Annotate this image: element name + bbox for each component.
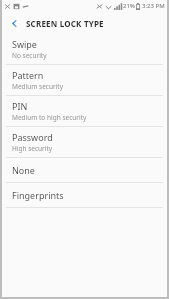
staticText: Fingerprints	[12, 189, 64, 201]
staticText: Swipe	[12, 38, 37, 50]
staticText: 3:23 PM	[142, 2, 165, 10]
staticText: Pattern	[12, 69, 44, 81]
staticText: No security	[12, 51, 47, 60]
button[interactable]: PIN	[2, 96, 167, 126]
staticText: Medium security	[12, 82, 63, 91]
button[interactable]: Swipe	[2, 34, 167, 64]
staticText: PIN	[12, 100, 28, 112]
button[interactable]: Fingerprints	[2, 183, 167, 207]
staticText: SCREEN LOCK TYPE	[26, 18, 104, 29]
staticText: None	[12, 164, 35, 176]
button[interactable]: Pattern	[2, 65, 167, 95]
button[interactable]: Password	[2, 127, 167, 157]
button[interactable]: None	[2, 158, 167, 182]
button[interactable]: Back	[2, 12, 26, 34]
staticText: High security	[12, 144, 53, 153]
staticText: Password	[12, 131, 53, 143]
staticText: 21%	[123, 2, 135, 10]
staticText: Medium to high security	[12, 113, 87, 122]
